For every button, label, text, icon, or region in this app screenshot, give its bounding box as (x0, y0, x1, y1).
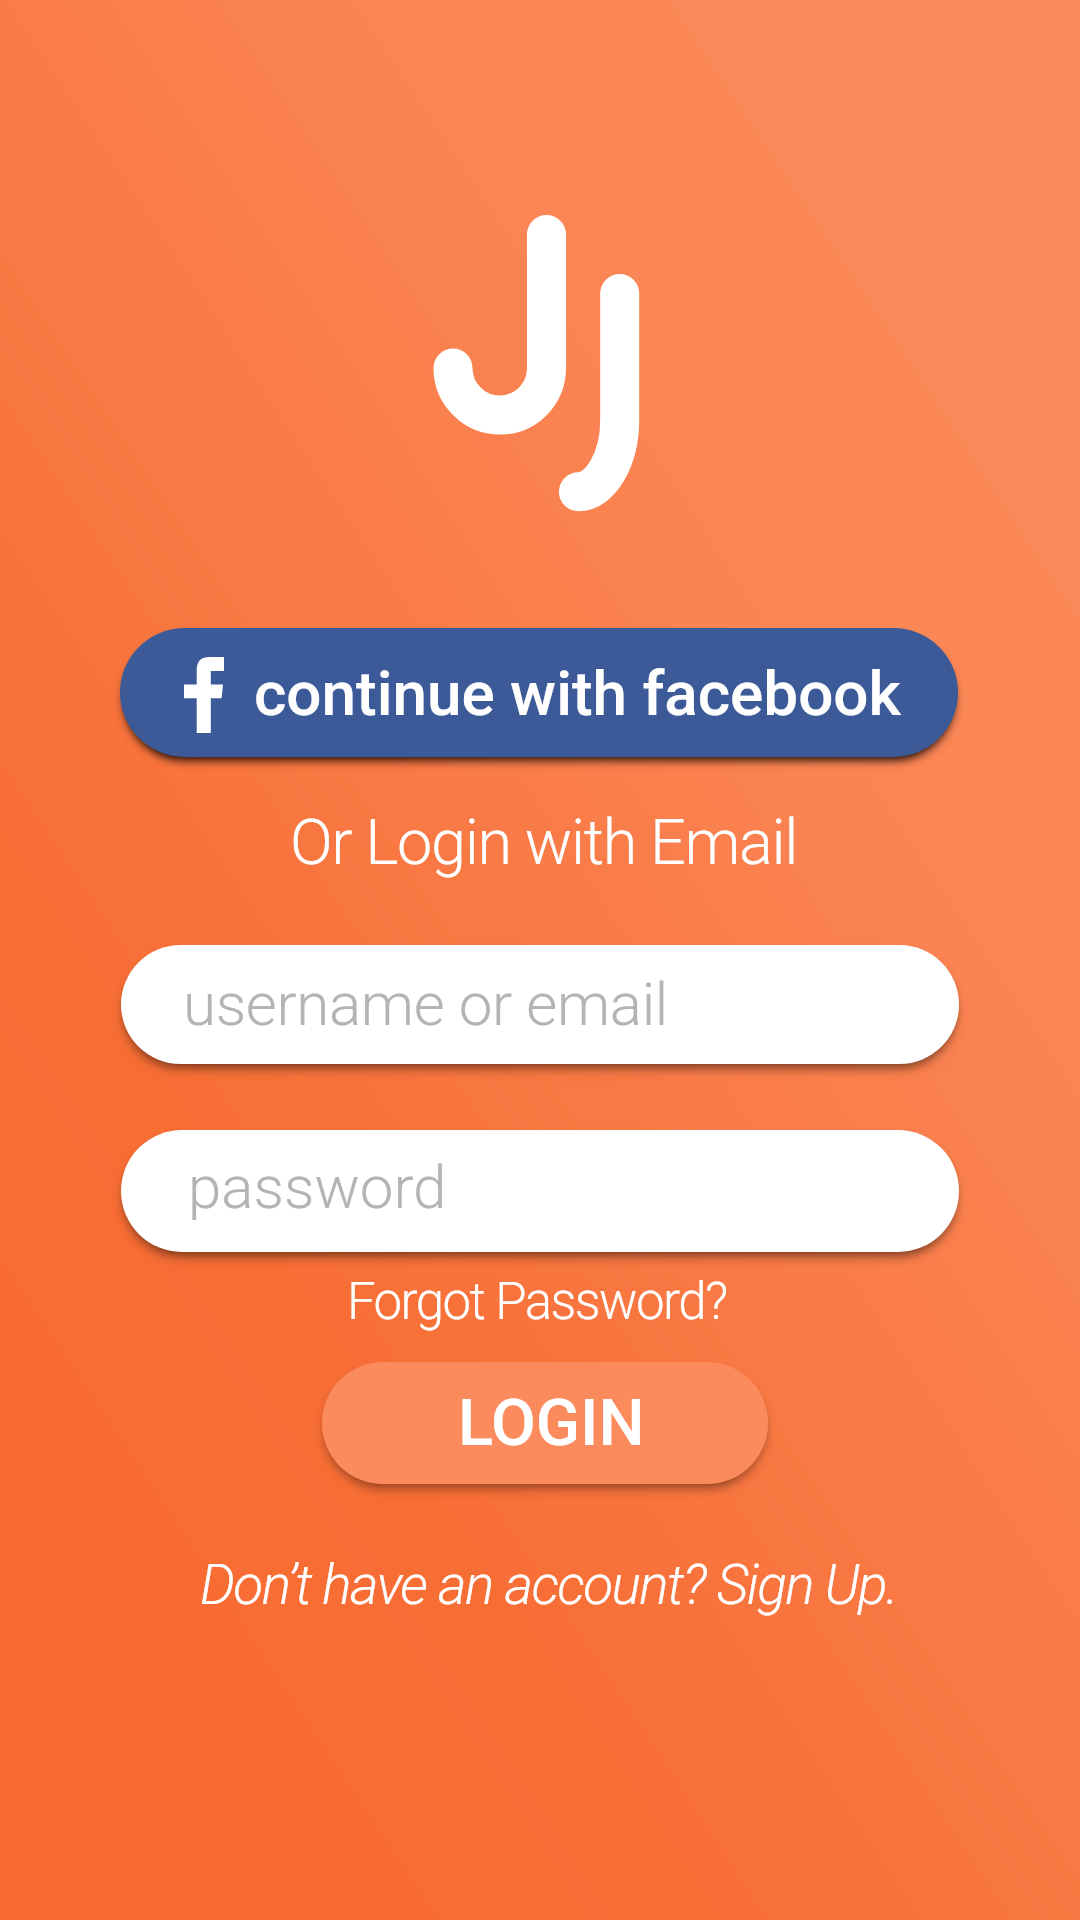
button[interactable]: Don’t have an account? Sign Up. (200, 1553, 898, 1617)
staticText: LOGIN (458, 1385, 645, 1461)
button[interactable]: Forgot Password? (347, 1272, 727, 1332)
staticText: password (188, 1152, 447, 1222)
staticText: Or Login with Email (290, 806, 798, 880)
button[interactable]: password (121, 1130, 959, 1252)
other: Jj logo (420, 190, 690, 530)
button[interactable]: LOGIN (322, 1362, 768, 1484)
button[interactable]: continue with facebook (120, 628, 958, 757)
staticText: username or email (183, 969, 669, 1039)
staticText: continue with facebook (254, 657, 901, 730)
button[interactable]: username or email (121, 945, 959, 1064)
